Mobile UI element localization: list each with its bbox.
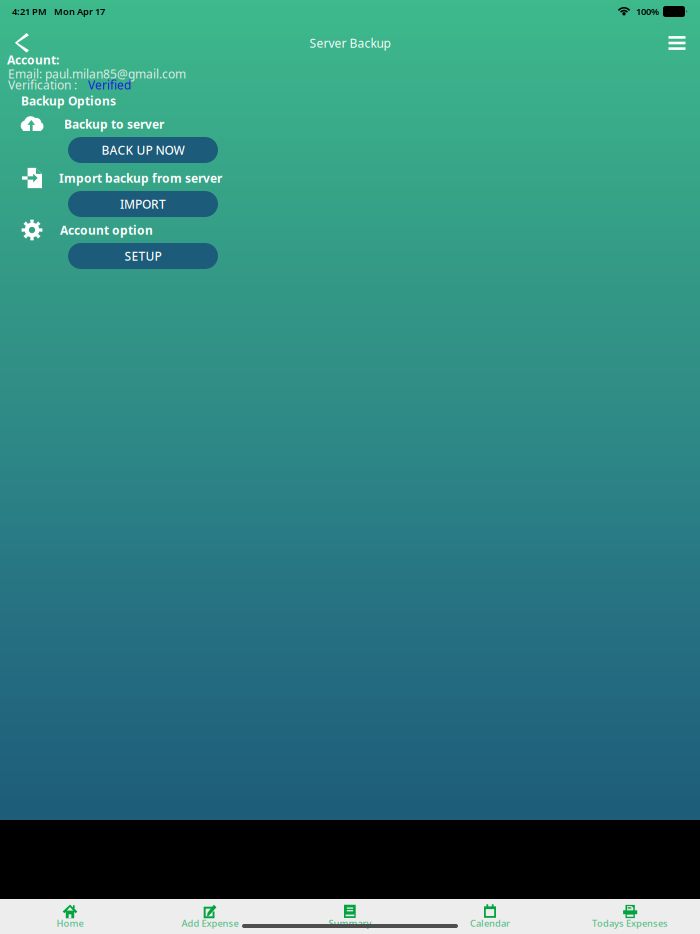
button[interactable]: SETUP xyxy=(68,243,218,269)
staticText: Calendar xyxy=(470,917,510,929)
staticText: Summary xyxy=(328,917,371,929)
staticText: 4:21 PM xyxy=(12,5,47,18)
staticText: Backup Options xyxy=(21,93,116,109)
staticText: IMPORT xyxy=(120,196,166,212)
button[interactable]: IMPORT xyxy=(68,191,218,217)
staticText: Backup to server xyxy=(64,116,164,132)
button[interactable]: Menu xyxy=(657,24,697,62)
button[interactable]: Add Expense xyxy=(140,899,280,934)
staticText: Server Backup xyxy=(309,35,390,51)
staticText: Account: xyxy=(7,52,59,68)
staticText: Todays Expenses xyxy=(592,917,668,929)
staticText: Verification : xyxy=(8,77,77,93)
staticText: BACK UP NOW xyxy=(101,142,184,158)
staticText: 100% xyxy=(636,5,659,18)
button[interactable]: Summary xyxy=(280,899,420,934)
staticText: Account option xyxy=(60,222,153,238)
staticText: Email: paul.milan85@gmail.com xyxy=(8,66,186,82)
staticText: Mon Apr 17 xyxy=(54,5,105,18)
staticText: Import backup from server xyxy=(59,170,222,186)
staticText: Verified xyxy=(88,77,131,93)
button[interactable]: Calendar xyxy=(420,899,560,934)
staticText: Add Expense xyxy=(181,917,238,929)
staticText: SETUP xyxy=(124,248,161,264)
button[interactable]: Back xyxy=(2,24,42,61)
button[interactable]: BACK UP NOW xyxy=(68,137,218,163)
staticText: Home xyxy=(56,917,83,929)
button[interactable]: Todays Expenses xyxy=(560,899,700,934)
button[interactable]: Home xyxy=(0,899,140,934)
